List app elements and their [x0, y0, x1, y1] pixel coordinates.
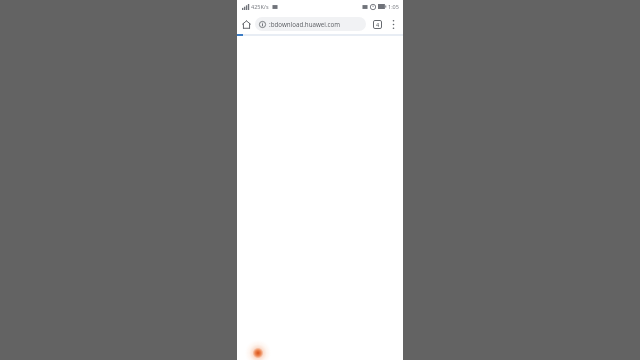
button[interactable]: Switch tabs, 4 open [369, 16, 385, 32]
staticText: :bdownload.huawei.com [269, 20, 341, 28]
button[interactable]: :bdownload.huawei.com [255, 17, 366, 31]
staticText: 1:05 [388, 3, 399, 10]
staticText: 425K/s [251, 3, 269, 10]
staticText: 4 [376, 21, 380, 28]
button[interactable]: Home [237, 15, 255, 33]
button[interactable]: More options [385, 16, 401, 32]
